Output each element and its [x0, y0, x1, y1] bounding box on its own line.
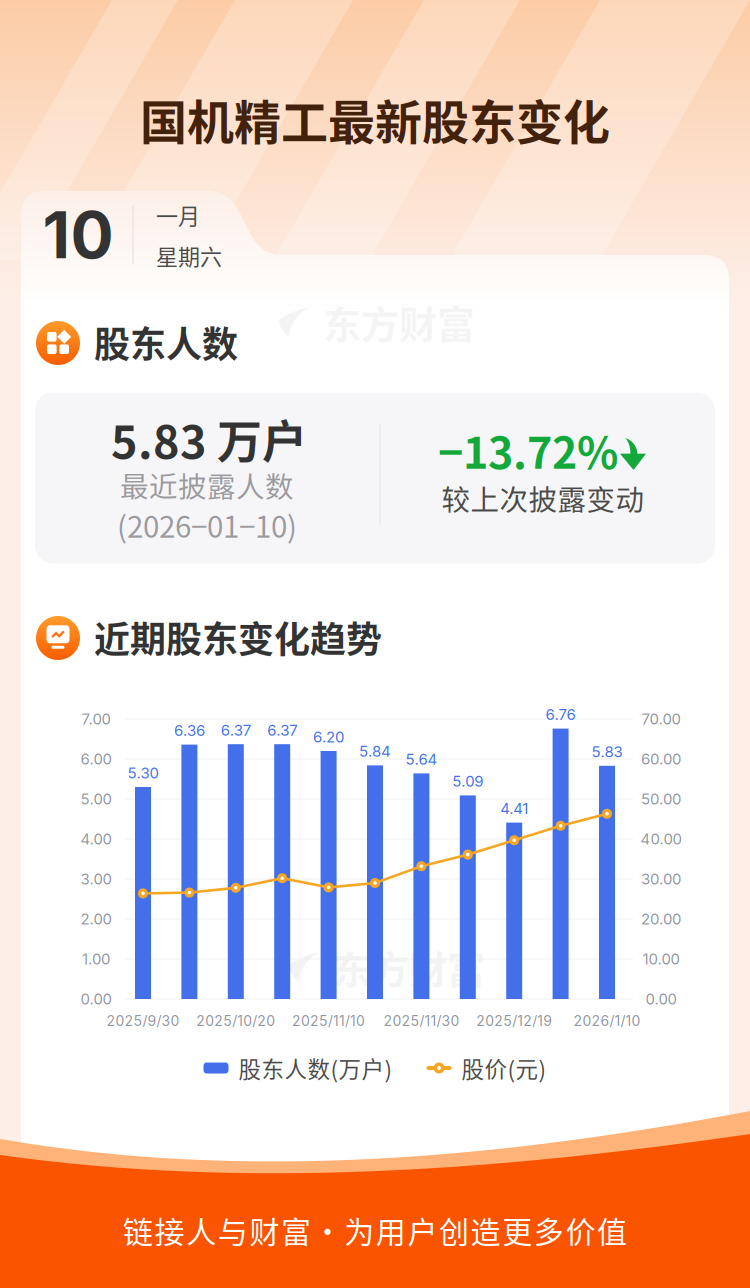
staticText: 6.00 — [80, 750, 111, 768]
staticText: 10.00 — [642, 950, 679, 968]
staticText: 4.41 — [500, 799, 528, 818]
staticText: 10 — [42, 196, 113, 274]
staticText: 50.00 — [641, 790, 681, 808]
staticText: 2025/11/30 — [383, 1012, 459, 1029]
staticText: 5.84 — [359, 742, 391, 760]
staticText: 股价(元) — [461, 1052, 546, 1084]
staticText: 股东人数 — [94, 316, 238, 368]
staticText: 2025/12/19 — [476, 1012, 552, 1029]
staticText: 2025/9/30 — [106, 1012, 179, 1029]
staticText: 东方财富 — [323, 294, 475, 349]
staticText: 1.00 — [82, 950, 110, 968]
staticText: 一月 — [156, 199, 200, 230]
staticText: 较上次披露变动 — [441, 477, 644, 519]
staticText: 2025/10/20 — [196, 1012, 275, 1029]
staticText: 60.00 — [641, 750, 681, 768]
staticText: 星期六 — [156, 239, 222, 271]
staticText: 6.36 — [174, 721, 205, 740]
staticText: 3.00 — [80, 870, 111, 888]
staticText: 东方财富 — [333, 939, 485, 994]
staticText: 最近披露人数 — [120, 464, 294, 506]
staticText: 5.83 — [591, 743, 622, 761]
staticText: 0.00 — [645, 990, 676, 1008]
staticText: −13.72% — [438, 419, 618, 481]
staticText: 2026/1/10 — [573, 1012, 640, 1029]
staticText: 20.00 — [641, 910, 681, 928]
staticText: 6.37 — [221, 721, 251, 739]
staticText: 5.30 — [127, 764, 158, 782]
staticText: 70.00 — [641, 710, 680, 728]
staticText: 0.00 — [80, 990, 111, 1008]
staticText: 2.00 — [80, 910, 111, 928]
staticText: 近期股东变化趋势 — [94, 611, 382, 663]
staticText: 链接人与财富·为用户创造更多价值 — [123, 1208, 627, 1252]
staticText: 6.20 — [313, 728, 344, 746]
staticText: 6.37 — [267, 721, 297, 739]
staticText: 5.00 — [80, 790, 111, 808]
staticText: 2025/11/10 — [292, 1012, 365, 1029]
staticText: 5.83 万户 — [111, 406, 307, 472]
staticText: 5.64 — [405, 750, 437, 768]
staticText: 7.00 — [81, 710, 110, 728]
staticText: 40.00 — [640, 830, 681, 848]
staticText: 国机精工最新股东变化 — [140, 85, 610, 153]
staticText: 6.76 — [546, 705, 576, 724]
staticText: 股东人数(万户) — [238, 1052, 392, 1084]
staticText: (2026−01−10) — [117, 504, 297, 546]
staticText: 30.00 — [641, 870, 681, 888]
staticText: 4.00 — [80, 830, 111, 848]
staticText: 5.09 — [452, 772, 483, 790]
